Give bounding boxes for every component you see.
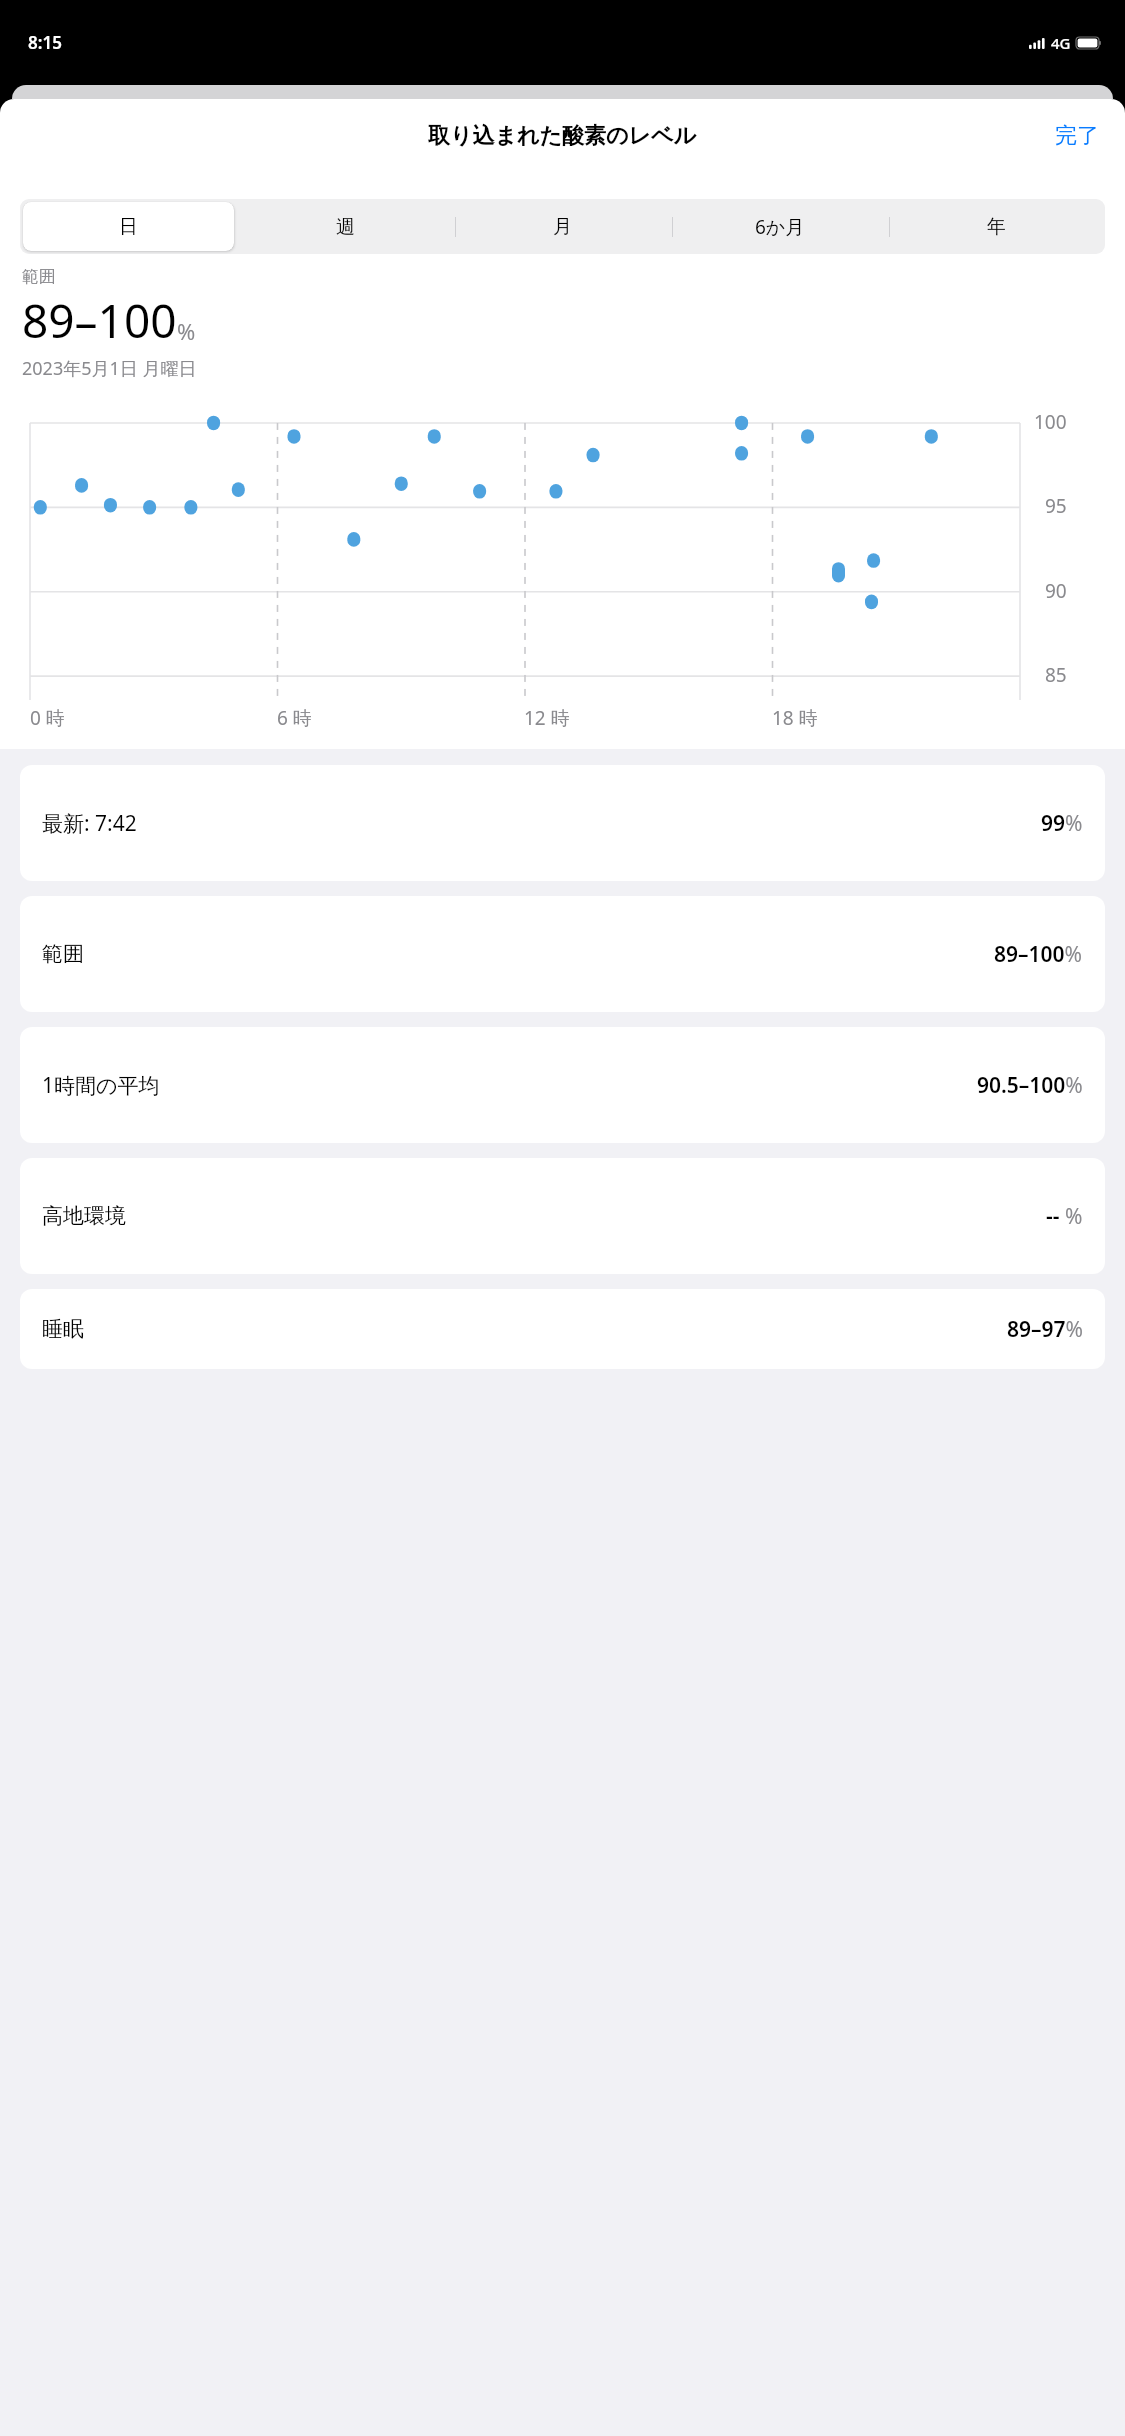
staticText: 2023年5月1日 月曜日 xyxy=(22,356,197,381)
staticText: 睡眠 xyxy=(42,1316,84,1342)
button[interactable]: 月 xyxy=(457,202,668,251)
staticText: 完了 xyxy=(1055,122,1099,150)
button[interactable]: 日 xyxy=(23,202,234,251)
staticText: 0 時 xyxy=(30,705,65,731)
button[interactable]: 6か月 xyxy=(674,202,885,251)
button[interactable]: 範囲 xyxy=(20,896,1105,1012)
staticText: 6 時 xyxy=(277,705,312,731)
staticText: 18 時 xyxy=(772,705,818,731)
staticText: % xyxy=(177,316,196,346)
staticText: 6か月 xyxy=(755,214,805,240)
staticText: 85 xyxy=(1045,662,1067,688)
staticText: 最新: 7:42 xyxy=(42,809,137,838)
staticText: 日 xyxy=(119,215,138,239)
staticText: 範囲 xyxy=(42,941,84,967)
button[interactable]: 高地環境 xyxy=(20,1158,1105,1274)
button[interactable]: 完了 xyxy=(1049,116,1105,156)
staticText: 12 時 xyxy=(524,705,570,731)
staticText: 89–97% xyxy=(1007,1315,1083,1344)
staticText: 週 xyxy=(336,215,355,239)
staticText: 90.5–100% xyxy=(977,1071,1083,1100)
button[interactable]: 年 xyxy=(891,202,1102,251)
staticText: 範囲 xyxy=(22,266,56,287)
staticText: -- % xyxy=(1046,1202,1083,1231)
staticText: 89–100 xyxy=(22,289,177,352)
staticText: 100 xyxy=(1034,409,1067,435)
button[interactable]: 週 xyxy=(240,202,451,251)
button[interactable]: 睡眠 xyxy=(20,1289,1105,1369)
staticText: 90 xyxy=(1045,578,1067,604)
button[interactable]: 最新: 7:42 xyxy=(20,765,1105,881)
staticText: 95 xyxy=(1045,493,1067,519)
staticText: 高地環境 xyxy=(42,1203,126,1229)
button[interactable]: 1時間の平均 xyxy=(20,1027,1105,1143)
staticText: 年 xyxy=(987,215,1006,239)
staticText: 1時間の平均 xyxy=(42,1071,160,1100)
staticText: 月 xyxy=(553,215,572,239)
staticText: 8:15 xyxy=(28,31,62,54)
staticText: 取り込まれた酸素のレベル xyxy=(428,122,697,150)
staticText: 89–100% xyxy=(994,940,1083,969)
staticText: 4G xyxy=(1051,33,1071,53)
staticText: 99% xyxy=(1041,809,1083,838)
